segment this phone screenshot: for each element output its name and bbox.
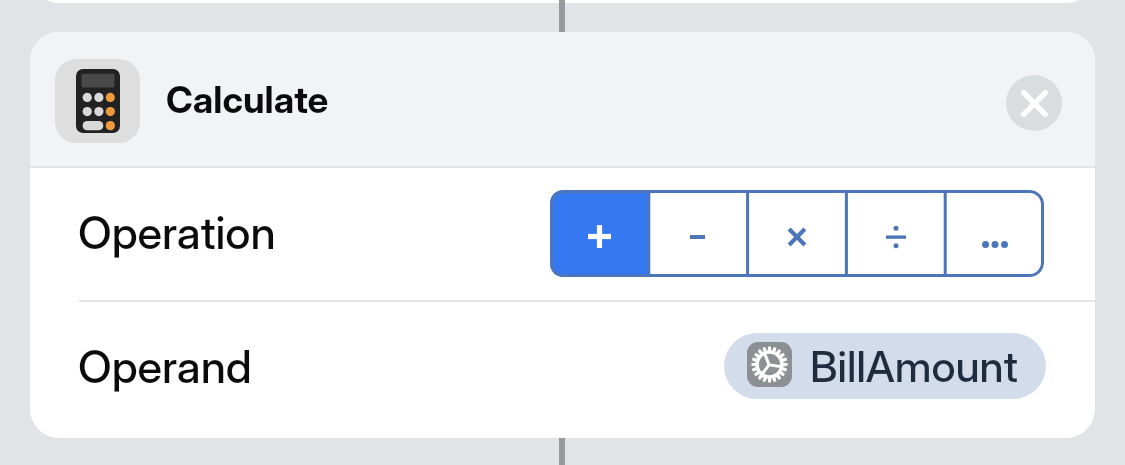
button[interactable]: Add: [550, 190, 648, 277]
button[interactable]: Operand: [30, 302, 1095, 438]
button[interactable]: Subtract: [648, 190, 747, 277]
button[interactable]: Operation: [30, 168, 1095, 300]
button[interactable]: Close: [1006, 75, 1062, 131]
staticText: Operation: [78, 205, 276, 259]
staticText: BillAmount: [810, 340, 1018, 392]
button[interactable]: More operations: [945, 190, 1044, 277]
button[interactable]: BillAmount: [724, 333, 1046, 399]
button[interactable]: Calculate action header: [30, 32, 1095, 166]
staticText: Operand: [78, 339, 252, 393]
button[interactable]: Divide: [846, 190, 945, 277]
staticText: Calculate: [166, 77, 329, 122]
button[interactable]: Multiply: [747, 190, 846, 277]
